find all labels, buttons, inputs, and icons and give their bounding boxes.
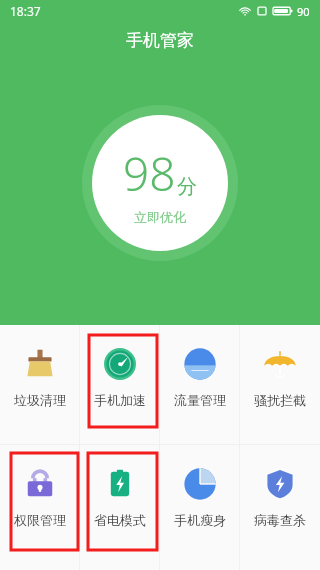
- button[interactable]: 省电模式: [80, 445, 160, 570]
- staticText: 98: [123, 142, 176, 205]
- staticText: 分: [177, 174, 197, 199]
- staticText: 省电模式: [94, 512, 146, 528]
- staticText: 18:37: [10, 3, 41, 19]
- staticText: 流量管理: [174, 392, 226, 408]
- button[interactable]: 病毒查杀: [240, 445, 320, 570]
- staticText: 垃圾清理: [14, 392, 66, 408]
- staticText: 骚扰拦截: [254, 392, 306, 408]
- staticText: 手机加速: [94, 392, 146, 408]
- staticText: 病毒查杀: [254, 512, 306, 528]
- staticText: 90: [297, 4, 310, 19]
- staticText: 权限管理: [14, 512, 66, 528]
- button[interactable]: 流量管理: [160, 325, 240, 444]
- staticText: 手机瘦身: [174, 512, 226, 528]
- button[interactable]: 手机加速: [80, 325, 160, 444]
- button[interactable]: 垃圾清理: [0, 325, 80, 444]
- button[interactable]: 98: [82, 105, 238, 261]
- staticText: 手机管家: [126, 30, 194, 51]
- button[interactable]: 骚扰拦截: [240, 325, 320, 444]
- button[interactable]: 手机瘦身: [160, 445, 240, 570]
- staticText: 立即优化: [134, 209, 186, 225]
- button[interactable]: 权限管理: [0, 445, 80, 570]
